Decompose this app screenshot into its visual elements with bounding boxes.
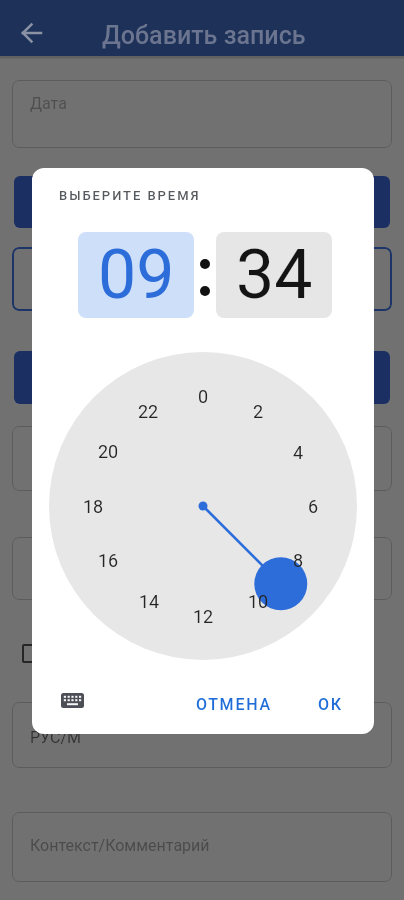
button[interactable]: ОТМЕНА xyxy=(189,689,279,719)
staticText: ОТМЕНА xyxy=(196,695,272,714)
staticText: 10 xyxy=(248,591,269,612)
button[interactable] xyxy=(14,351,390,404)
button[interactable] xyxy=(61,693,84,708)
button[interactable] xyxy=(22,24,42,42)
staticText: 09 xyxy=(98,235,175,315)
staticText: Добавить запись xyxy=(102,21,306,50)
staticText: 22 xyxy=(138,401,159,422)
staticText: 6 xyxy=(308,496,319,517)
button[interactable] xyxy=(12,702,392,768)
staticText: 16 xyxy=(98,550,119,571)
staticText: 8 xyxy=(293,550,304,571)
button[interactable]: ОК xyxy=(305,689,355,719)
staticText: ВЫБЕРИТЕ ВРЕМЯ xyxy=(59,188,201,203)
button[interactable]: 09 xyxy=(78,232,194,318)
staticText: 12 xyxy=(193,606,214,627)
button[interactable] xyxy=(12,80,392,148)
staticText: 34 xyxy=(236,235,313,315)
staticText: ОК xyxy=(318,695,343,714)
button[interactable] xyxy=(22,644,41,663)
staticText: Контекст/Комментарий xyxy=(30,836,210,855)
button[interactable] xyxy=(12,426,392,491)
button[interactable] xyxy=(12,247,392,311)
staticText: Дата xyxy=(30,94,67,113)
staticText: РУС/М xyxy=(30,728,81,747)
staticText: 14 xyxy=(139,591,160,612)
button[interactable] xyxy=(12,812,392,882)
staticText: 4 xyxy=(293,442,304,463)
button[interactable]: 34 xyxy=(216,232,332,318)
staticText: 0 xyxy=(198,386,209,407)
button[interactable] xyxy=(12,537,392,600)
staticText: 20 xyxy=(98,441,119,462)
staticText: 18 xyxy=(83,496,104,517)
staticText: 2 xyxy=(253,401,264,422)
button[interactable] xyxy=(14,176,390,228)
